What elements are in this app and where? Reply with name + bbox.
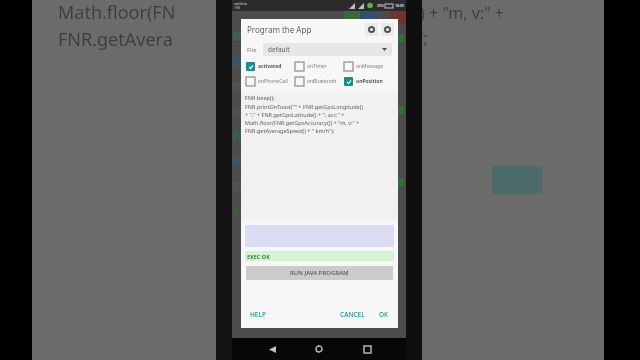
staticText: '; [420, 27, 428, 49]
staticText: 20% [377, 3, 384, 8]
staticText: onBluetooth [307, 78, 337, 85]
staticText: RUN JAVA PROGRAM [290, 269, 349, 277]
button[interactable]: HELP [247, 307, 269, 322]
staticText: 18:05 [395, 3, 404, 8]
button[interactable]: Info [381, 23, 394, 36]
staticText: CANCEL [340, 310, 365, 319]
button[interactable]: default [263, 43, 392, 56]
staticText: onPhoneCall [258, 78, 288, 85]
button[interactable]: FNR.beep(); FNR.printOnToast("" + FNR.ge… [241, 91, 398, 221]
staticText: FNR.beep(); FNR.printOnToast("" + FNR.ge… [245, 94, 363, 134]
button[interactable]: Settings [365, 23, 378, 36]
staticText: OK [379, 310, 389, 319]
button[interactable]: activated [246, 62, 295, 71]
button[interactable]: onMessage [344, 62, 393, 71]
button[interactable]: CANCEL [337, 307, 368, 322]
button[interactable]: onPosition [344, 77, 393, 86]
staticText: File [247, 46, 257, 54]
button[interactable]: Recents [359, 341, 375, 357]
staticText: ) + "m, v:" + [420, 2, 504, 24]
button[interactable]: onTimer [295, 62, 344, 71]
staticText: EXEC OK [247, 253, 270, 260]
button[interactable]: RUN JAVA PROGRAM [246, 266, 393, 280]
button[interactable]: OK [376, 307, 392, 322]
staticText: Program the App [247, 24, 312, 35]
staticText: Math.floor(FN [58, 0, 176, 25]
staticText: onMessage [356, 63, 383, 70]
button[interactable]: onPhoneCall [246, 77, 295, 86]
staticText: onPosition [356, 78, 383, 85]
staticText: onTimer [307, 63, 327, 70]
staticText: default [268, 45, 290, 54]
button[interactable]: Back [264, 341, 280, 357]
staticText: FNR.getAvera [58, 27, 173, 52]
staticText: activated [258, 63, 282, 70]
staticText: HELP [250, 310, 266, 319]
button[interactable]: onBluetooth [295, 77, 344, 86]
button[interactable]: Home [311, 341, 327, 357]
staticText: vodafone rTM [234, 2, 248, 10]
